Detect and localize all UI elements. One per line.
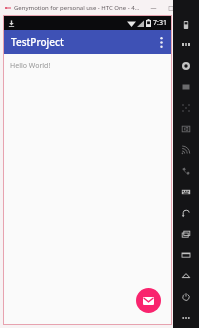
- button[interactable]: Back: [173, 202, 199, 223]
- staticText: Genymotion for personal use - HTC One - …: [14, 4, 140, 12]
- button[interactable]: Rotate: [173, 97, 199, 118]
- button[interactable]: Recents: [173, 223, 199, 244]
- button[interactable]: More options: [151, 30, 171, 54]
- button[interactable]: Keyboard: [173, 181, 199, 202]
- staticText: □: [168, 4, 174, 11]
- staticText: TestProject: [11, 35, 64, 49]
- button[interactable]: Display: [173, 76, 199, 97]
- staticText: Hello World!: [10, 61, 51, 71]
- staticText: —: [150, 4, 157, 12]
- button[interactable]: Camera: [173, 55, 199, 76]
- button[interactable]: More: [173, 307, 199, 328]
- button[interactable]: Screenshot: [173, 244, 199, 265]
- button[interactable]: Power: [173, 286, 199, 307]
- button[interactable]: Maximize: [162, 0, 179, 15]
- button[interactable]: Network: [173, 139, 199, 160]
- button[interactable]: Battery: [173, 15, 199, 35]
- button[interactable]: Phone: [173, 160, 199, 181]
- button[interactable]: Identifiers: [173, 118, 199, 139]
- button[interactable]: Send email: [136, 288, 161, 313]
- staticText: 7:31: [153, 18, 167, 28]
- button[interactable]: GPS: [173, 35, 199, 55]
- button[interactable]: Minimize: [145, 0, 162, 15]
- button[interactable]: Home: [173, 265, 199, 286]
